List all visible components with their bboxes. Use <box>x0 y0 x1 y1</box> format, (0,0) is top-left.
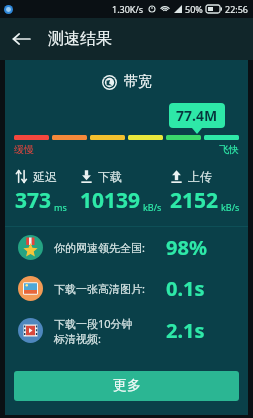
staticText: 373 <box>15 186 52 215</box>
staticText: 你的网速领先全国: <box>54 240 145 255</box>
staticText: 2.1s <box>166 317 205 344</box>
button[interactable]: 更多 <box>14 371 239 401</box>
staticText: ms <box>54 201 67 213</box>
staticText: 98% <box>166 234 207 261</box>
staticText: 上传 <box>188 169 212 184</box>
staticText: 22:56 <box>225 3 249 15</box>
staticText: 带宽 <box>124 73 152 91</box>
staticText: 下载一张高清图片: <box>54 281 145 296</box>
staticText: 50% <box>185 3 203 15</box>
staticText: 飞快 <box>219 143 239 156</box>
button[interactable]: Back <box>0 18 42 60</box>
button[interactable]: 下载一段10分钟 <box>5 309 248 352</box>
staticText: 测速结果 <box>48 29 112 49</box>
staticText: kB/s <box>143 201 162 213</box>
staticText: 延迟 <box>33 169 57 184</box>
staticText: 77.4M <box>176 106 218 125</box>
staticText: kB/s <box>221 201 240 213</box>
staticText: 更多 <box>113 377 141 395</box>
button[interactable]: 下载一张高清图片: <box>5 268 248 309</box>
staticText: 2152 <box>170 186 219 215</box>
button[interactable]: 你的网速领先全国: <box>5 227 248 268</box>
staticText: 10139 <box>80 186 141 215</box>
staticText: 1.30K/s <box>112 3 144 15</box>
staticText: 下载一段10分钟 <box>54 316 133 331</box>
staticText: 缓慢 <box>14 143 34 156</box>
staticText: 标清视频: <box>54 331 101 346</box>
staticText: 下载 <box>98 169 122 184</box>
staticText: 0.1s <box>166 275 205 302</box>
